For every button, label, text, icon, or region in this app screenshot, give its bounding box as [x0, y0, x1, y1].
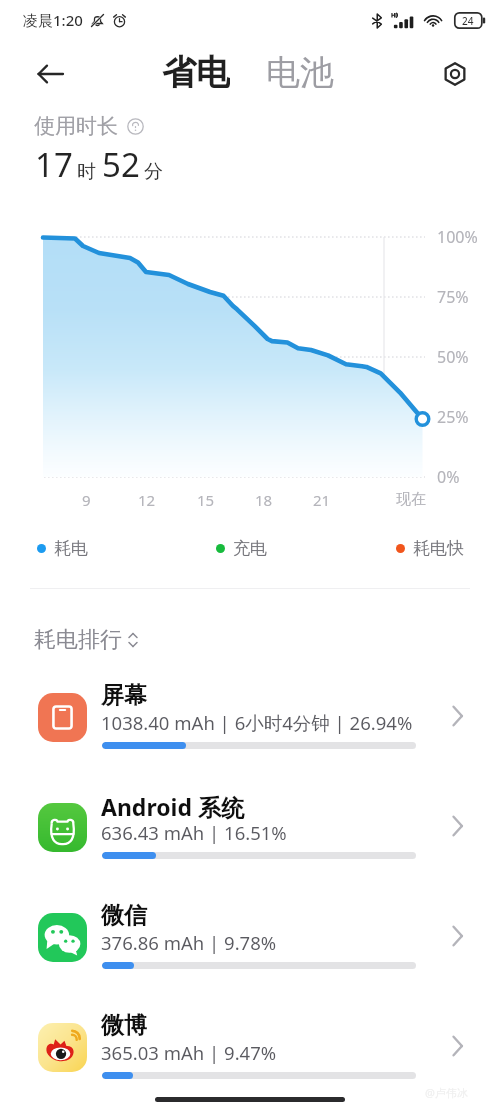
staticText: 365.03 mAh | 9.47%: [101, 1040, 277, 1065]
button[interactable]: 省电: [158, 44, 234, 96]
staticText: 微信: [101, 901, 147, 930]
staticText: 电池: [266, 51, 334, 89]
staticText: Android 系统: [101, 791, 244, 822]
staticText: 52: [102, 142, 140, 187]
button[interactable]: 耗电排行: [28, 620, 144, 660]
staticText: 15: [197, 490, 215, 510]
staticText: 636.43 mAh | 16.51%: [101, 820, 287, 845]
staticText: 微博: [101, 1011, 147, 1040]
staticText: 50%: [437, 346, 469, 368]
staticText: 时: [77, 160, 96, 184]
button[interactable]: 耗电: [37, 534, 88, 563]
staticText: 75%: [437, 286, 469, 308]
staticText: 耗电快: [413, 538, 464, 559]
button[interactable]: 微信: [0, 892, 500, 996]
staticText: 分: [144, 160, 163, 184]
staticText: 现在: [396, 490, 426, 509]
staticText: 耗电: [54, 538, 88, 559]
staticText: 24: [462, 14, 474, 28]
button[interactable]: 电池: [262, 44, 338, 96]
button[interactable]: 充电: [216, 534, 267, 563]
staticText: 17: [35, 142, 73, 187]
staticText: 充电: [233, 538, 267, 559]
staticText: 省电: [162, 51, 230, 89]
staticText: 9: [82, 490, 91, 510]
staticText: 0%: [437, 466, 460, 488]
staticText: 凌晨1:20: [23, 10, 83, 30]
staticText: 21: [313, 490, 331, 510]
staticText: 12: [138, 490, 156, 510]
staticText: 376.86 mAh | 9.78%: [101, 930, 277, 955]
staticText: @卢伟冰: [425, 1085, 468, 1100]
button[interactable]: Back: [28, 52, 72, 96]
staticText: 100%: [437, 226, 478, 248]
staticText: 屏幕: [101, 681, 147, 710]
button[interactable]: 微博: [0, 1002, 500, 1106]
staticText: 耗电排行: [34, 626, 122, 654]
staticText: 1038.40 mAh | 6小时4分钟 | 26.94%: [101, 710, 413, 735]
button[interactable]: 屏幕: [0, 672, 500, 776]
button[interactable]: 耗电快: [396, 534, 464, 563]
button[interactable]: Settings: [434, 53, 476, 95]
staticText: 25%: [437, 406, 469, 428]
staticText: 使用时长: [34, 113, 118, 139]
staticText: 18: [255, 490, 273, 510]
button[interactable]: Android 系统: [0, 782, 500, 886]
